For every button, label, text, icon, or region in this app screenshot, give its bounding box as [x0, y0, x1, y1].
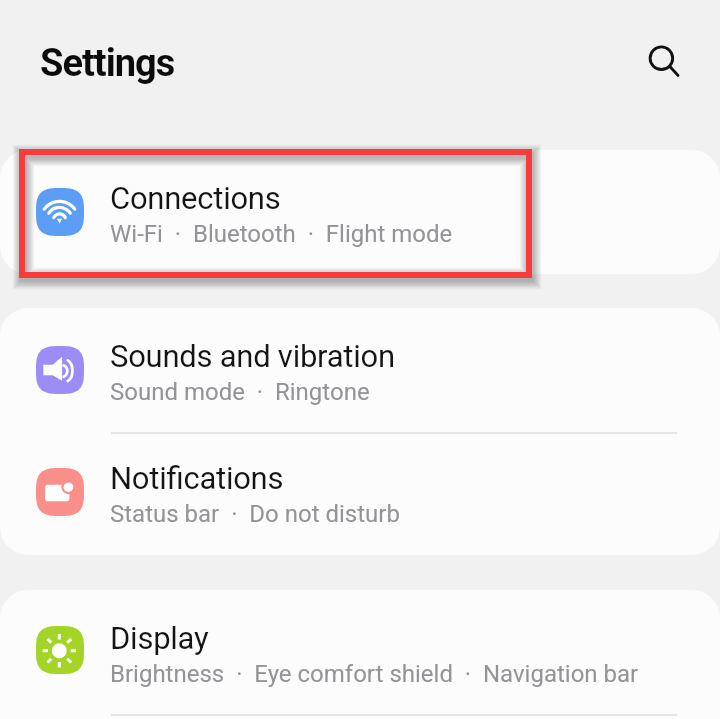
staticText: Connections [110, 180, 281, 216]
button[interactable]: Notifications [0, 434, 720, 555]
button[interactable]: Display [0, 590, 720, 714]
staticText: Brightness · Eye comfort shield · Naviga… [110, 660, 639, 688]
button[interactable]: Sounds and vibration [0, 308, 720, 432]
staticText: Sound mode · Ringtone [110, 378, 370, 406]
staticText: Display [110, 620, 209, 656]
staticText: Sounds and vibration [110, 338, 395, 374]
button[interactable]: Connections [0, 150, 720, 274]
staticText: Wi-Fi · Bluetooth · Flight mode [110, 220, 453, 248]
staticText: Status bar · Do not disturb [110, 500, 400, 528]
button[interactable]: Search [636, 35, 693, 92]
staticText: Notifications [110, 460, 284, 496]
staticText: Settings [40, 41, 175, 86]
